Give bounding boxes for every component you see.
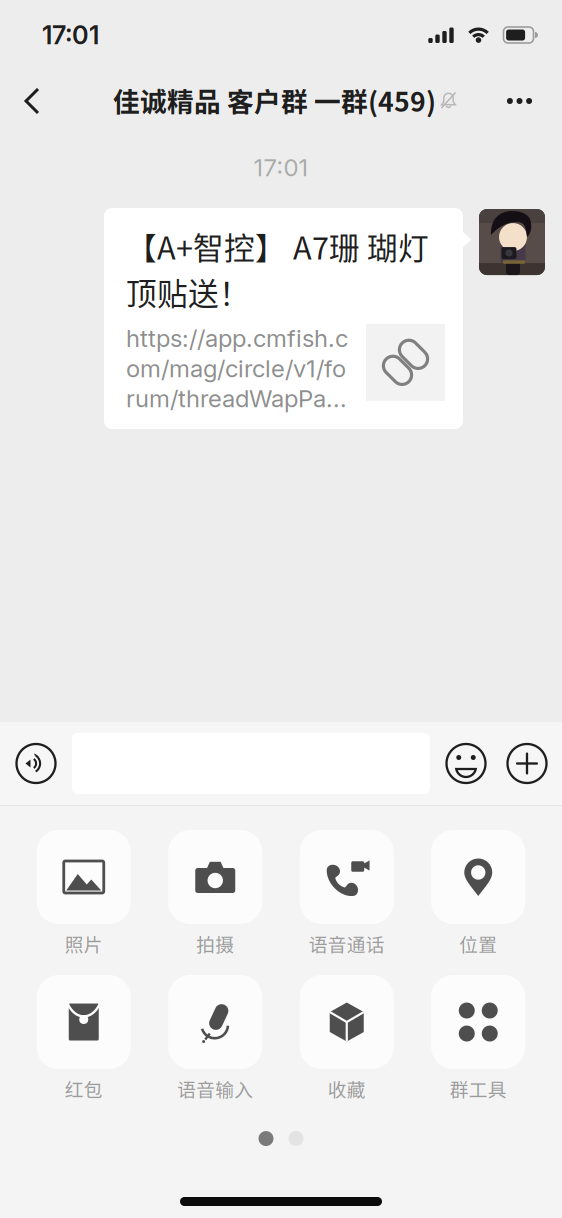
button[interactable]: Emoji	[446, 743, 486, 783]
button[interactable]: 语音输入	[149, 975, 281, 1102]
staticText: 位置	[459, 930, 497, 957]
staticText: 语音通话	[309, 930, 385, 957]
staticText: 拍摄	[196, 930, 234, 957]
staticText: 语音输入	[177, 1075, 253, 1102]
button[interactable]: More options	[507, 743, 547, 783]
staticText: 【A+智控】 A7珊 瑚灯	[126, 224, 429, 268]
button[interactable]: More	[490, 71, 549, 131]
button[interactable]: 收藏	[281, 975, 412, 1102]
button[interactable]: 群工具	[412, 975, 544, 1102]
button[interactable]: 拍摄	[149, 830, 281, 957]
staticText: 顶贴送！	[126, 269, 250, 314]
button[interactable]: Back	[10, 71, 54, 131]
button[interactable]: 位置	[412, 830, 544, 957]
button[interactable]: 照片	[18, 830, 149, 957]
button[interactable]: Voice message	[16, 743, 56, 783]
staticText: 红包	[65, 1075, 103, 1102]
staticText: rum/threadWapPa...	[126, 384, 347, 413]
staticText: 17:01	[42, 20, 99, 50]
staticText: 收藏	[328, 1075, 366, 1102]
staticText: https://app.cmfish.c	[126, 324, 348, 353]
staticText: 佳诚精品 客户群 一群(459)	[113, 81, 436, 119]
button[interactable]: 红包	[18, 975, 149, 1102]
staticText: om/mag/circle/v1/fo	[126, 354, 346, 383]
staticText: 17:01	[253, 153, 308, 182]
staticText: 群工具	[450, 1075, 507, 1102]
staticText: 照片	[65, 930, 103, 957]
button[interactable]: 语音通话	[281, 830, 412, 957]
